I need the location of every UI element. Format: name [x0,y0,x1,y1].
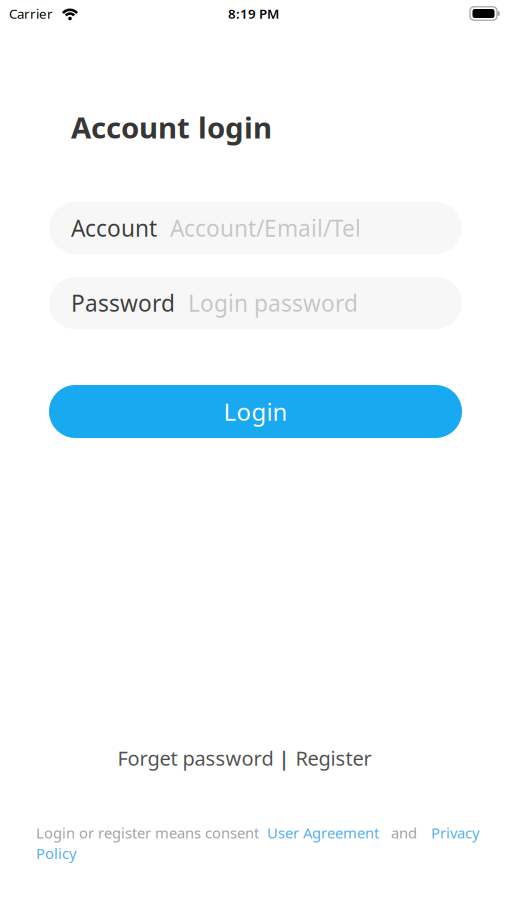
staticText: User Agreement [267,823,379,842]
button[interactable]: Forget password [117,745,273,771]
button[interactable]: Password [49,277,462,329]
button[interactable]: Account [49,202,462,254]
staticText: 8:19 PM [228,5,279,22]
staticText: Policy [36,843,76,863]
button[interactable]: Privacy [431,823,479,842]
button[interactable]: User Agreement [267,823,379,842]
staticText: Forget password [117,745,273,771]
button[interactable]: Register [295,745,371,771]
staticText: Password [71,288,175,318]
button[interactable]: Policy [36,843,76,863]
staticText: Account login [71,107,272,146]
staticText: Login [223,396,287,427]
staticText: Carrier [9,5,53,22]
staticText: Account [71,213,157,243]
staticText: | [278,745,289,771]
staticText: and [391,823,417,842]
staticText: Login or register means consent [36,823,259,842]
staticText: Privacy [431,823,479,842]
staticText: Account/Email/Tel [170,213,361,243]
button[interactable]: Login [49,385,462,438]
staticText: Register [295,745,371,771]
staticText: Login password [188,288,358,318]
